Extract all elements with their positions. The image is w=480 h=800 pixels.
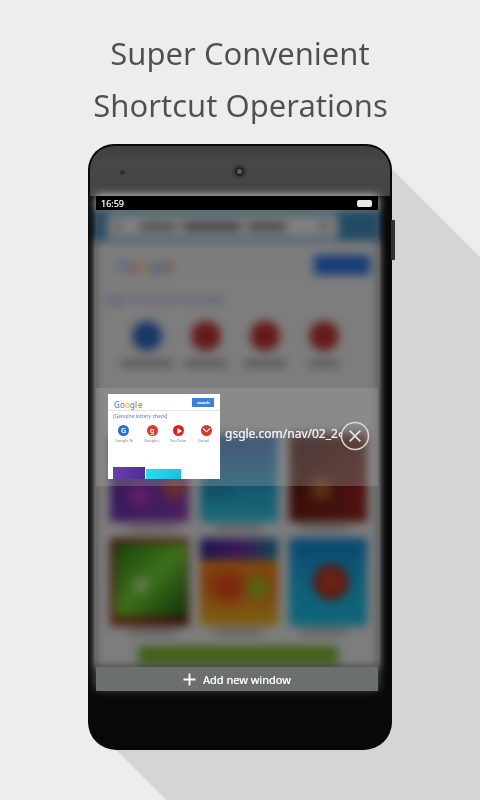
staticText: 16:59 <box>101 197 125 209</box>
staticText: gsgle.com/nav/02_2‹ <box>225 425 342 441</box>
staticText: e <box>165 255 175 277</box>
button[interactable]: Add new window <box>96 667 378 691</box>
staticText: G <box>114 399 120 410</box>
staticText: Gmail <box>198 438 209 443</box>
staticText: l <box>160 255 165 277</box>
staticText: g <box>130 399 135 410</box>
staticText: YouTube <box>170 438 187 443</box>
staticText: Add new window <box>203 672 291 687</box>
staticText: g <box>150 426 155 436</box>
staticText: e <box>138 399 143 410</box>
button[interactable]: Close window <box>341 422 369 450</box>
button[interactable]: G <box>108 394 220 479</box>
staticText: l <box>135 399 138 410</box>
staticText: Shortcut Operations <box>93 84 388 126</box>
staticText: g <box>150 255 160 277</box>
staticText: [Genuine lottery check] <box>113 413 168 420</box>
staticText: o <box>125 399 130 410</box>
staticText: o <box>120 399 125 410</box>
staticText: o <box>130 255 140 277</box>
staticText: search <box>197 400 210 405</box>
staticText: Google News <box>115 438 133 443</box>
staticText: Super Convenient <box>110 32 370 74</box>
staticText: Google+ <box>144 438 160 443</box>
staticText: o <box>140 255 150 277</box>
staticText: G <box>121 426 127 436</box>
staticText: G <box>118 255 130 277</box>
